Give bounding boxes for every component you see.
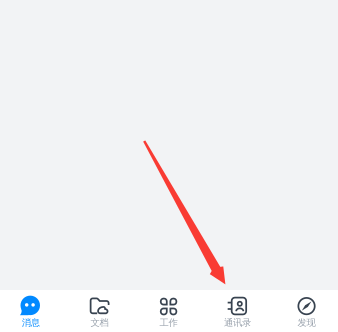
staticText: 消息 — [22, 317, 40, 328]
button[interactable]: 发现 — [272, 290, 338, 332]
button[interactable]: 工作 — [134, 290, 203, 332]
button[interactable]: 通讯录 — [203, 290, 272, 332]
staticText: 发现 — [298, 317, 316, 328]
button[interactable]: 文档 — [65, 290, 134, 332]
button[interactable]: 消息 — [0, 290, 65, 332]
staticText: 通讯录 — [224, 317, 251, 328]
staticText: 工作 — [160, 317, 178, 328]
staticText: 文档 — [91, 317, 109, 328]
